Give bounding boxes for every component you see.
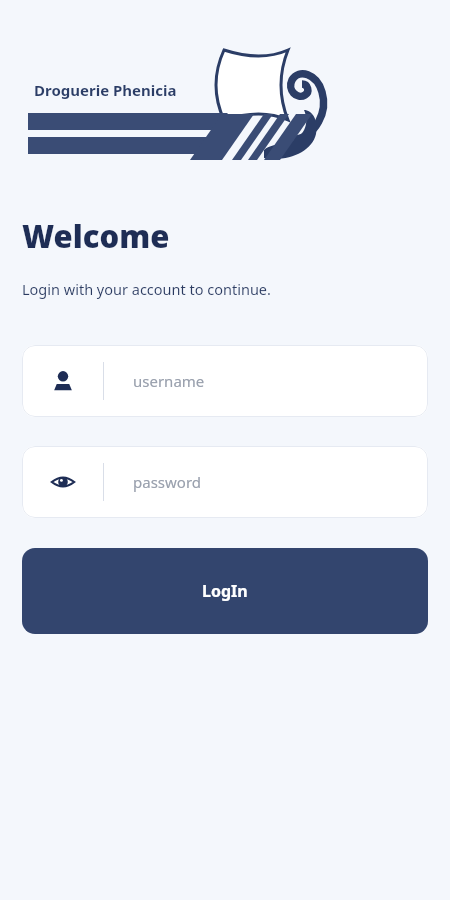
staticText: LogIn: [202, 580, 248, 602]
other: Droguerie Phenicia logo: [16, 40, 346, 170]
button[interactable]: Username: [22, 345, 428, 417]
staticText: Droguerie Phenicia: [34, 80, 177, 100]
button[interactable]: Show password: [22, 446, 428, 518]
staticText: Welcome: [22, 215, 170, 257]
other: Show password: [22, 446, 103, 518]
button[interactable]: LogIn: [22, 548, 428, 634]
staticText: Login with your account to continue.: [22, 279, 271, 299]
staticText: username: [133, 371, 205, 391]
staticText: password: [133, 472, 201, 492]
other: Username: [22, 345, 103, 417]
